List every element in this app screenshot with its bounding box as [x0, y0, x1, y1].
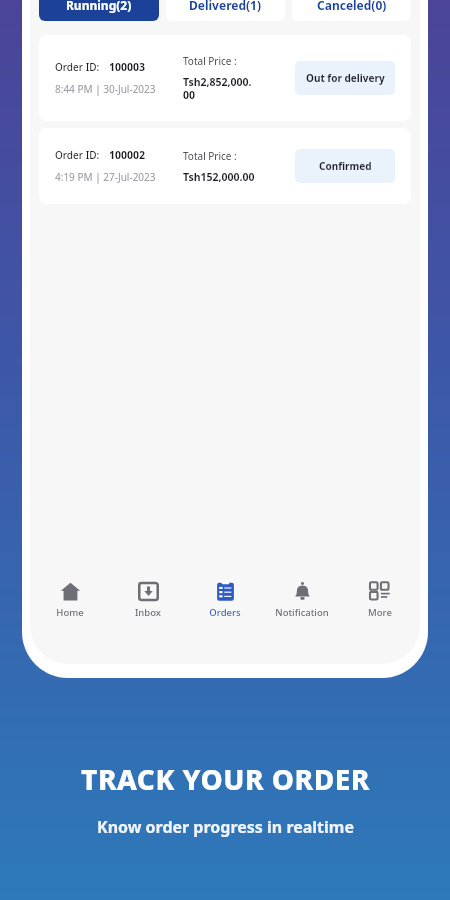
- staticText: Tsh152,000.00: [183, 170, 255, 184]
- button[interactable]: Delivered(1): [166, 0, 285, 21]
- staticText: 8:44 PM | 30-Jul-2023: [55, 82, 156, 96]
- staticText: Inbox: [135, 606, 161, 619]
- staticText: Home: [56, 606, 84, 619]
- staticText: 4:19 PM | 27-Jul-2023: [55, 170, 156, 184]
- staticText: Order ID:: [55, 60, 100, 74]
- staticText: Order ID:: [55, 148, 100, 162]
- staticText: More: [368, 606, 392, 619]
- staticText: Total Price :: [183, 54, 237, 68]
- staticText: Running(2): [66, 0, 132, 13]
- staticText: Total Price :: [183, 149, 237, 163]
- staticText: 100002: [109, 148, 146, 162]
- staticText: Know order progress in realtime: [97, 816, 354, 838]
- staticText: Tsh2,852,000. 00: [183, 75, 252, 102]
- staticText: Confirmed: [319, 159, 372, 173]
- button[interactable]: Order ID:: [39, 35, 411, 121]
- staticText: Notification: [275, 606, 329, 619]
- button[interactable]: Confirmed: [295, 149, 395, 183]
- staticText: 100003: [109, 60, 146, 74]
- button[interactable]: Home: [33, 577, 107, 623]
- button[interactable]: Order ID:: [39, 128, 411, 204]
- staticText: Orders: [209, 606, 241, 619]
- staticText: Out for delivery: [306, 71, 385, 85]
- button[interactable]: Out for delivery: [295, 61, 395, 95]
- staticText: Delivered(1): [189, 0, 262, 13]
- button[interactable]: Running(2): [39, 0, 159, 21]
- button[interactable]: Inbox: [111, 577, 185, 623]
- staticText: TRACK YOUR ORDER: [81, 760, 370, 798]
- staticText: Canceled(0): [317, 0, 387, 13]
- button[interactable]: Canceled(0): [292, 0, 411, 21]
- button[interactable]: Notification: [265, 577, 339, 623]
- button[interactable]: Orders: [188, 577, 262, 623]
- button[interactable]: More: [343, 577, 417, 623]
